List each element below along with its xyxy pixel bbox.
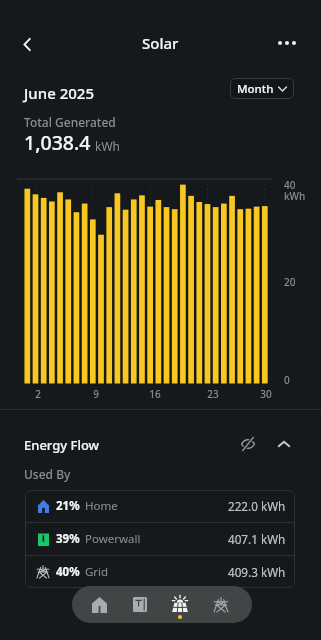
staticText: 30 <box>256 387 276 401</box>
staticText: Total Generated <box>24 114 116 130</box>
staticText: 409.3 kWh <box>228 564 286 580</box>
button[interactable]: Back <box>12 29 42 59</box>
button[interactable]: Hide <box>234 430 262 458</box>
button[interactable]: Month <box>230 78 294 99</box>
staticText: 407.1 kWh <box>228 531 286 547</box>
staticText: 2 <box>28 387 48 401</box>
staticText: 40 kWh <box>284 178 306 203</box>
staticText: 39% <box>56 531 80 547</box>
button[interactable]: Grid <box>203 586 239 623</box>
button[interactable]: Home <box>81 586 117 623</box>
staticText: 9 <box>86 387 106 401</box>
button[interactable]: Collapse <box>270 430 298 458</box>
staticText: kWh <box>95 138 120 154</box>
button[interactable]: 21% <box>25 490 295 522</box>
staticText: 40% <box>56 564 80 580</box>
staticText: Energy Flow <box>24 436 100 454</box>
button[interactable]: 39% <box>25 523 295 555</box>
button[interactable]: Solar <box>162 586 198 623</box>
staticText: 20 <box>284 275 296 289</box>
staticText: Powerwall <box>85 531 141 547</box>
staticText: 23 <box>203 387 223 401</box>
staticText: Grid <box>85 564 109 580</box>
staticText: 21% <box>56 498 80 514</box>
staticText: 1,038.4 <box>24 129 91 156</box>
staticText: Used By <box>24 466 71 482</box>
staticText: 16 <box>145 387 165 401</box>
button[interactable]: Powerwall <box>122 586 158 623</box>
staticText: June 2025 <box>24 83 94 103</box>
staticText: Month <box>237 81 274 97</box>
button[interactable]: More options <box>271 28 303 58</box>
button[interactable]: 40% <box>25 556 295 588</box>
staticText: Solar <box>142 33 179 53</box>
staticText: 0 <box>284 373 290 387</box>
staticText: 222.0 kWh <box>228 498 286 514</box>
staticText: Home <box>85 498 118 514</box>
